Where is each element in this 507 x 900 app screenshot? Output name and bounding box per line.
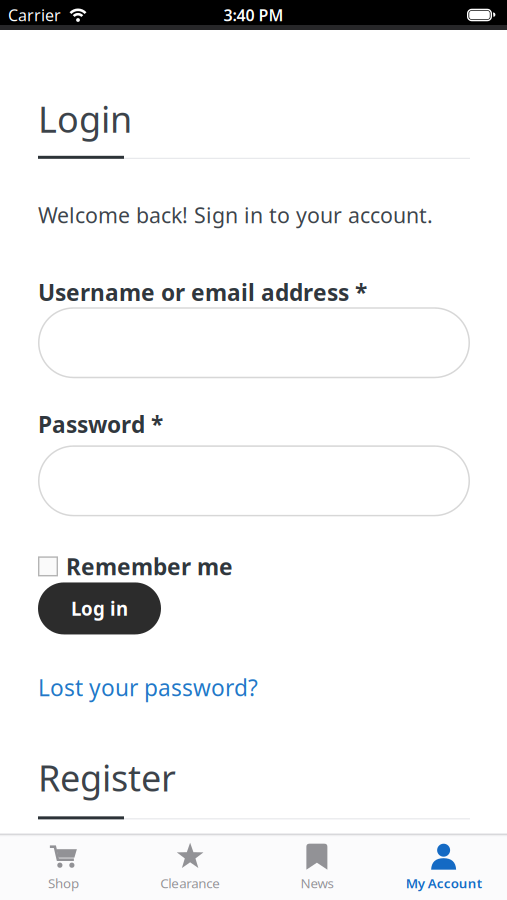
button[interactable]: News xyxy=(253,843,380,892)
staticText: Shop xyxy=(48,874,79,892)
staticText: Remember me xyxy=(66,551,233,581)
button[interactable]: Shop xyxy=(0,843,127,892)
staticText: Login xyxy=(38,95,132,143)
staticText: Username or email address * xyxy=(38,277,367,307)
button[interactable]: Clearance xyxy=(127,843,254,892)
button[interactable]: Lost your password? xyxy=(38,672,258,702)
staticText: News xyxy=(300,874,333,892)
button[interactable]: Remember me xyxy=(38,551,233,581)
staticText: Welcome back! Sign in to your account. xyxy=(38,201,433,229)
button[interactable]: My Account xyxy=(380,843,507,892)
staticText: My Account xyxy=(406,874,482,892)
staticText: Password * xyxy=(38,409,163,439)
button[interactable]: Log in xyxy=(38,582,161,634)
staticText: Carrier xyxy=(8,4,61,26)
staticText: Lost your password? xyxy=(38,672,258,702)
staticText: Log in xyxy=(71,596,128,621)
staticText: Clearance xyxy=(160,874,220,892)
staticText: Register xyxy=(38,753,176,801)
staticText: 3:40 PM xyxy=(223,4,283,26)
